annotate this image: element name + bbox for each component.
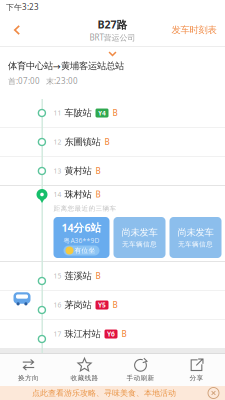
staticText: 珠村站 (61, 189, 91, 200)
staticText: B (100, 137, 109, 147)
button[interactable]: 尚未发车 (169, 217, 221, 258)
staticText: B (108, 108, 117, 118)
staticText: Y4 (98, 109, 106, 117)
staticText: 东圃镇站 (61, 136, 100, 148)
button[interactable]: 手动刷新 (112, 355, 168, 385)
staticText: 11 (53, 109, 61, 117)
staticText: B (108, 300, 117, 310)
staticText: 尚未发车 (121, 227, 157, 238)
staticText: B (91, 166, 100, 176)
staticText: 14 (53, 190, 61, 199)
staticText: 无车辆信息 (178, 240, 213, 248)
staticText: 无车辆信息 (122, 240, 157, 248)
staticText: 换方向 (18, 374, 39, 382)
staticText: 16 (53, 301, 61, 309)
button[interactable]: 换方向 (0, 355, 56, 385)
staticText: B (117, 329, 126, 339)
staticText: 茅岗站 (61, 299, 91, 311)
button[interactable]: 点此查看游乐攻略、寻味美食、本地活动 (0, 386, 225, 400)
button[interactable]: 14分6站 (53, 217, 109, 258)
staticText: 粤A36**9D (63, 236, 99, 245)
button[interactable]: 15 (0, 262, 225, 290)
staticText: B (91, 271, 100, 281)
staticText: 距离您最近的三辆车 (53, 204, 116, 213)
button[interactable]: 17 (0, 320, 225, 348)
staticText: 体育中心站→黄埔客运站总站 (8, 60, 124, 72)
staticText: B27路 (97, 17, 127, 32)
staticText: 14分6站 (61, 220, 101, 235)
button[interactable]: 体育中心站→黄埔客运站总站 (0, 47, 225, 99)
staticText: 13 (53, 167, 61, 175)
button[interactable]: 尚未发车 (113, 217, 165, 258)
staticText: 发车时刻表 (171, 24, 216, 36)
staticText: 17 (53, 330, 61, 338)
staticText: 黄村站 (61, 165, 91, 177)
staticText: 莲溪站 (61, 270, 91, 282)
button[interactable]: 返回 (0, 14, 34, 46)
button[interactable]: 16 (0, 291, 225, 319)
staticText: 15 (53, 272, 61, 280)
button[interactable]: 13 (0, 157, 225, 185)
staticText: 分享 (189, 374, 203, 382)
staticText: 手动刷新 (126, 374, 154, 382)
staticText: 下午3:23 (6, 2, 39, 12)
button[interactable]: 发车时刻表 (163, 14, 225, 46)
staticText: 尚未发车 (177, 227, 213, 238)
staticText: 珠江村站 (61, 328, 100, 340)
staticText: 12 (53, 138, 61, 146)
staticText: Y5 (98, 301, 106, 309)
button[interactable]: 11 (0, 99, 225, 127)
staticText: BRT营运公司 (89, 32, 135, 43)
staticText: Y6 (107, 330, 115, 338)
button[interactable]: 12 (0, 128, 225, 156)
staticText: B (91, 189, 100, 200)
staticText: 车陂站 (61, 107, 91, 119)
button[interactable]: 分享 (168, 355, 224, 385)
staticText: 点此查看游乐攻略、寻味美食、本地活动 (32, 388, 176, 398)
staticText: 收藏线路 (70, 374, 98, 382)
button[interactable]: 收藏线路 (56, 355, 112, 385)
staticText: 有位坐 (74, 246, 95, 255)
staticText: 首:07:00 末:23:00 (8, 76, 78, 86)
